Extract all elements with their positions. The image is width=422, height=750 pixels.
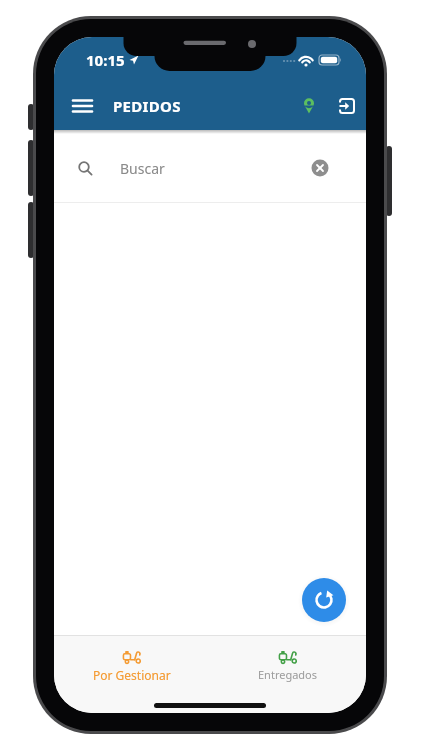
staticText: PEDIDOS xyxy=(113,96,181,116)
button[interactable] xyxy=(302,578,346,622)
button[interactable]: Entregados xyxy=(210,636,366,713)
staticText: Buscar xyxy=(120,159,165,178)
staticText: 10:15 xyxy=(86,50,125,70)
staticText: Por Gestionar xyxy=(93,667,171,683)
button[interactable] xyxy=(308,156,332,180)
button[interactable] xyxy=(335,94,359,118)
button[interactable]: Buscar xyxy=(54,134,366,202)
staticText: Entregados xyxy=(258,667,318,682)
button[interactable]: Por Gestionar xyxy=(54,636,210,713)
button[interactable] xyxy=(65,89,99,123)
